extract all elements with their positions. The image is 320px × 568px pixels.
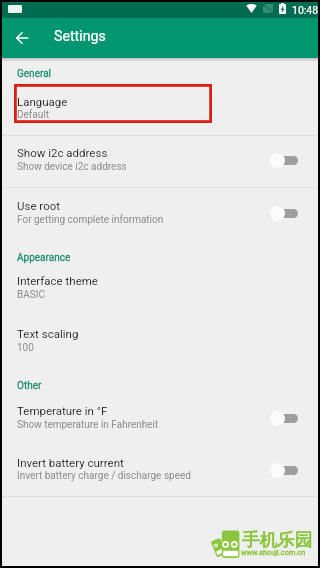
staticText: Temperature in °F bbox=[17, 404, 108, 417]
staticText: www.shouji.com.cn bbox=[241, 548, 306, 557]
staticText: Invert battery charge / discharge speed bbox=[17, 470, 191, 482]
button[interactable]: Back bbox=[4, 18, 40, 58]
staticText: Settings bbox=[54, 28, 106, 45]
staticText: Other bbox=[17, 380, 42, 392]
button[interactable] bbox=[2, 318, 318, 370]
button[interactable] bbox=[2, 394, 318, 446]
button[interactable]: Toggle bbox=[270, 203, 298, 223]
button[interactable] bbox=[2, 135, 318, 186]
staticText: Appearance bbox=[17, 252, 71, 264]
button[interactable]: Toggle bbox=[270, 408, 298, 428]
button[interactable] bbox=[2, 265, 318, 318]
staticText: Invert battery current bbox=[17, 456, 124, 469]
staticText: Use root bbox=[17, 199, 61, 212]
staticText: Interface theme bbox=[17, 274, 98, 287]
staticText: 手机乐园 bbox=[242, 529, 312, 551]
button[interactable]: Toggle bbox=[270, 460, 298, 480]
staticText: For getting complete information bbox=[17, 214, 164, 226]
staticText: Language bbox=[17, 95, 68, 108]
button[interactable] bbox=[2, 187, 318, 240]
button[interactable] bbox=[2, 84, 318, 134]
staticText: 100 bbox=[17, 342, 34, 354]
staticText: Show i2c address bbox=[17, 146, 108, 159]
staticText: Show device i2c address bbox=[17, 161, 127, 173]
button[interactable] bbox=[2, 446, 318, 498]
staticText: 10:48 bbox=[292, 4, 319, 16]
staticText: BASIC bbox=[17, 289, 45, 301]
staticText: Show temperature in Fahrenheit bbox=[17, 419, 159, 431]
button[interactable]: Toggle bbox=[270, 150, 298, 170]
staticText: General bbox=[17, 68, 52, 80]
staticText: Text scaling bbox=[17, 327, 79, 340]
staticText: Default bbox=[17, 109, 49, 121]
